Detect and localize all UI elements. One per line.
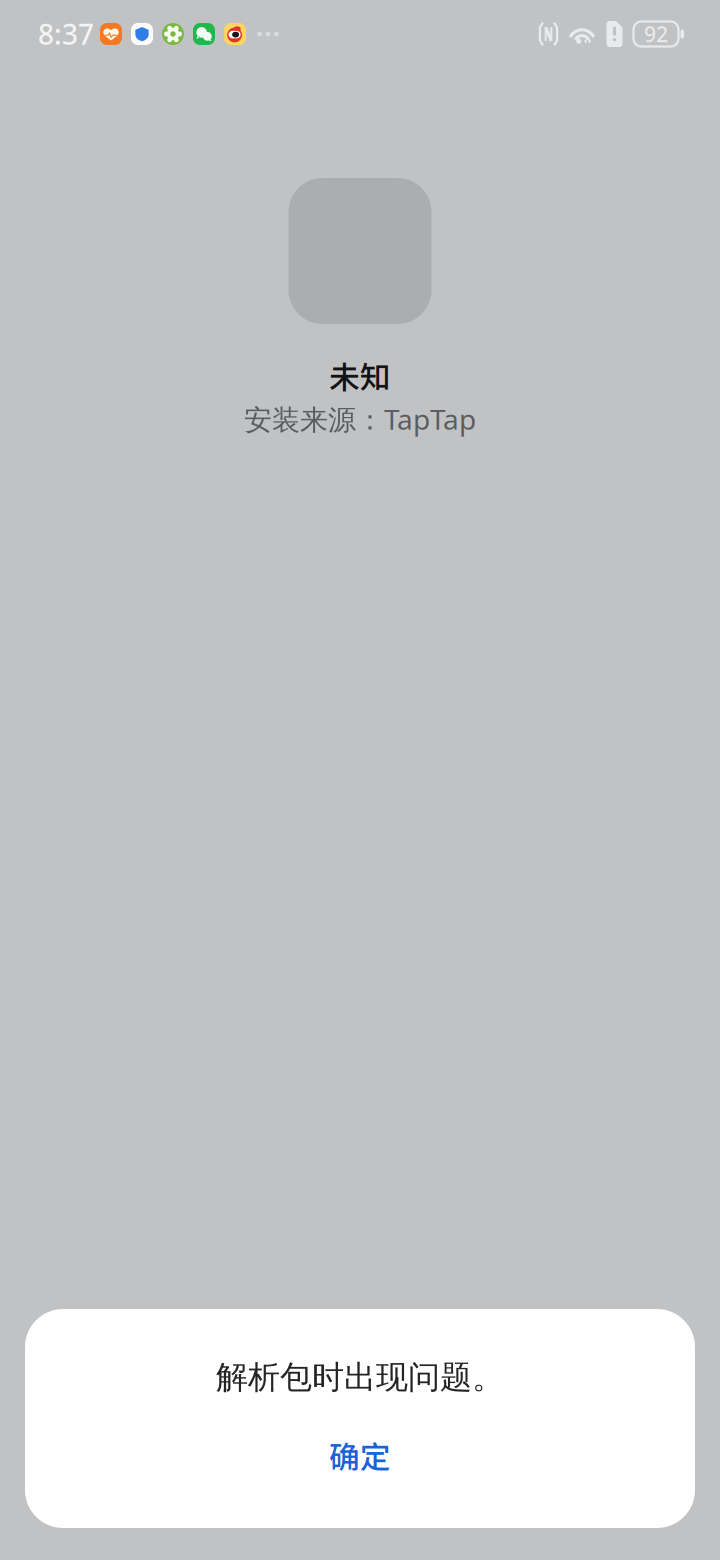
- button[interactable]: More notifications: [255, 31, 279, 36]
- staticText: 确定: [329, 1433, 391, 1477]
- button[interactable]: Health notification: [100, 23, 122, 45]
- button[interactable]: 确定: [291, 1428, 429, 1482]
- staticText: 92: [644, 20, 668, 48]
- staticText: 安装来源：TapTap: [244, 400, 476, 438]
- staticText: 8:37: [38, 15, 94, 53]
- button[interactable]: Settings notification: [162, 23, 184, 45]
- staticText: 解析包时出现问题。: [216, 1358, 504, 1397]
- button[interactable]: WeChat notification: [193, 23, 215, 45]
- button[interactable]: Weibo notification: [224, 23, 246, 45]
- staticText: 未知: [329, 353, 391, 397]
- button[interactable]: Security notification: [131, 23, 153, 45]
